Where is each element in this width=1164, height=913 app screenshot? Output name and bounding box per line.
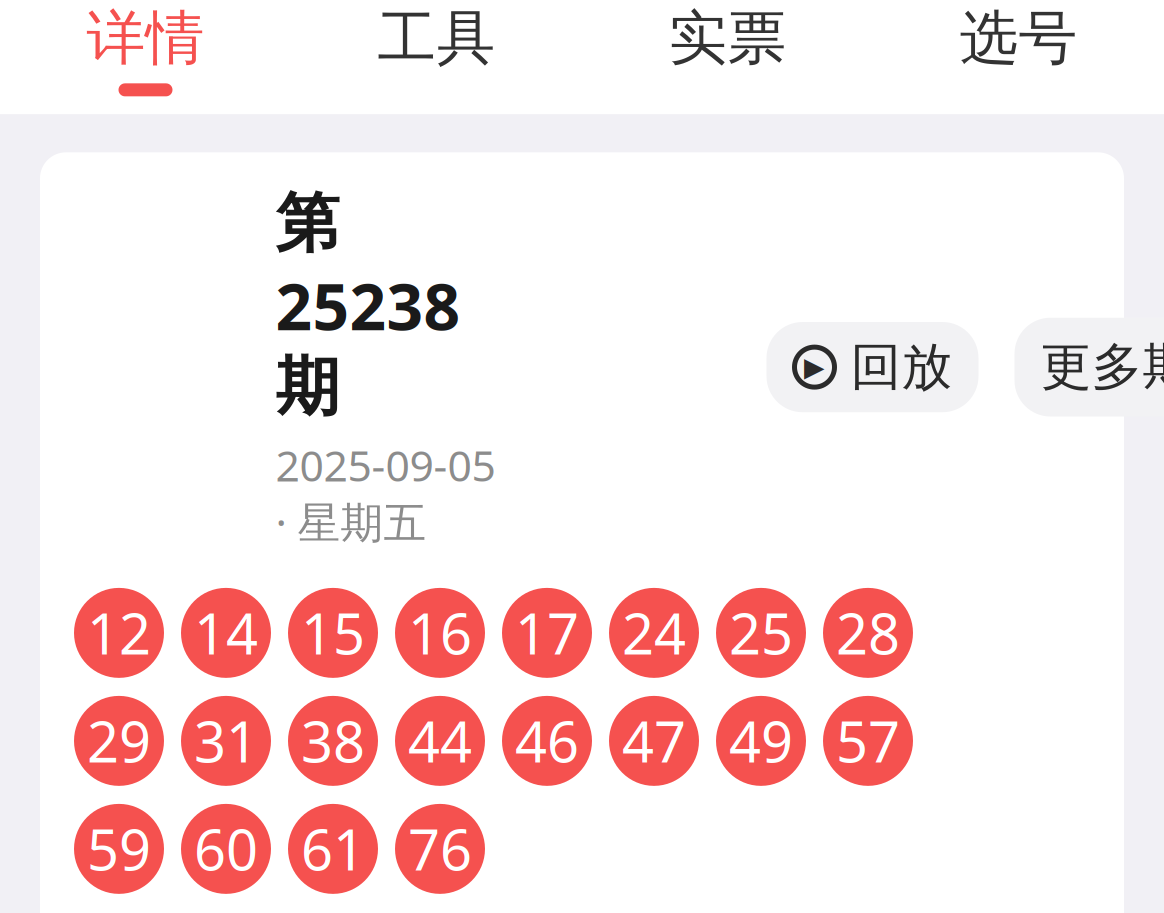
staticText: 14 bbox=[194, 596, 258, 670]
staticText: 详情 bbox=[86, 2, 204, 74]
staticText: 76 bbox=[408, 812, 472, 886]
staticText: 38 bbox=[301, 704, 365, 778]
staticText: 16 bbox=[408, 596, 472, 670]
staticText: 2025-09-05 · 星期五 bbox=[275, 437, 495, 550]
staticText: 59 bbox=[87, 812, 151, 886]
button[interactable]: ▶ bbox=[766, 322, 978, 412]
staticText: 46 bbox=[515, 704, 579, 778]
staticText: 57 bbox=[836, 704, 900, 778]
staticText: ▶ bbox=[804, 352, 825, 382]
staticText: 61 bbox=[301, 812, 365, 886]
button[interactable]: 详情 bbox=[0, 0, 291, 114]
staticText: 更多期次 bbox=[1040, 336, 1164, 398]
staticText: 实票 bbox=[668, 2, 786, 74]
staticText: 工具 bbox=[377, 2, 495, 74]
staticText: 44 bbox=[408, 704, 472, 778]
staticText: 回放 bbox=[850, 336, 952, 398]
button[interactable]: 更多期次 bbox=[1014, 318, 1164, 416]
staticText: 47 bbox=[622, 704, 686, 778]
button[interactable]: 选号 bbox=[873, 0, 1164, 114]
staticText: 17 bbox=[515, 596, 579, 670]
staticText: 60 bbox=[194, 812, 258, 886]
staticText: 31 bbox=[194, 704, 258, 778]
staticText: 25 bbox=[729, 596, 793, 670]
staticText: 49 bbox=[729, 704, 793, 778]
staticText: 15 bbox=[301, 596, 365, 670]
staticText: 29 bbox=[87, 704, 151, 778]
staticText: 选号 bbox=[959, 2, 1077, 74]
button[interactable]: 工具 bbox=[291, 0, 582, 114]
staticText: 12 bbox=[87, 596, 151, 670]
button[interactable]: 实票 bbox=[582, 0, 873, 114]
staticText: 24 bbox=[622, 596, 686, 670]
staticText: 第25238期 bbox=[275, 184, 460, 427]
staticText: 28 bbox=[836, 596, 900, 670]
